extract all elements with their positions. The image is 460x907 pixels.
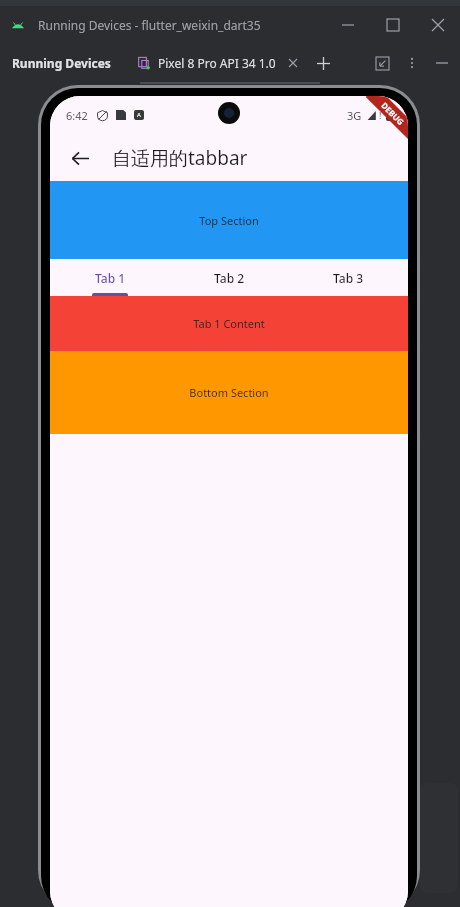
staticText: 自适用的tabbar [112,145,248,171]
staticText: Tab 2 [214,270,245,286]
button[interactable]: Tab 1 [50,259,170,296]
button[interactable]: min [325,6,370,44]
button[interactable]: Hide panel [370,51,394,75]
button[interactable]: Tab 3 [289,259,408,296]
staticText: Running Devices - flutter_weixin_dart35 [38,17,261,33]
button[interactable]: New device [312,52,334,74]
staticText: Running Devices [12,55,111,71]
button[interactable]: Back [60,138,100,178]
staticText: ! [379,109,382,121]
button[interactable]: Pixel 8 Pro API 34 1.0 [137,55,276,71]
staticText: Top Section [199,213,259,228]
staticText: Tab 3 [333,270,364,286]
staticText: 6:42 [66,108,88,123]
button[interactable]: Close device tab [284,54,302,72]
staticText: DEBUG [379,100,407,127]
button[interactable]: close [415,6,460,44]
staticText: Tab 1 [95,270,126,286]
staticText: Tab 1 Content [193,316,265,331]
staticText: A [137,111,141,119]
button[interactable]: Minimize tool window [430,51,454,75]
button[interactable]: More options [400,51,424,75]
button[interactable]: max [370,6,415,44]
button[interactable]: Tab 2 [170,259,289,296]
staticText: 3G [347,108,362,123]
staticText: Pixel 8 Pro API 34 1.0 [158,55,276,71]
staticText: Bottom Section [189,385,269,400]
